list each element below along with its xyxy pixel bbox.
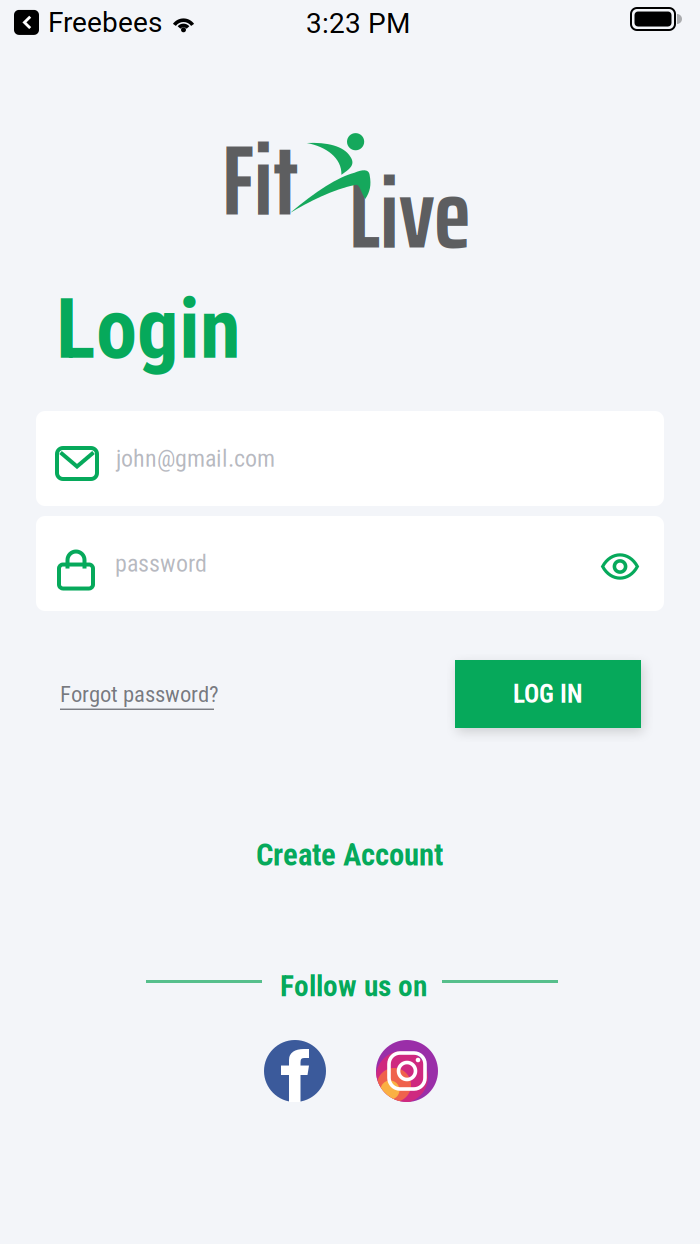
staticText: Login — [56, 281, 241, 378]
button[interactable]: Instagram — [376, 1040, 438, 1102]
button[interactable]: Create Account — [256, 833, 443, 877]
staticText: 3:23 PM — [306, 7, 410, 40]
button[interactable]: Facebook — [264, 1040, 326, 1102]
button[interactable]: Forgot password? — [60, 681, 219, 710]
staticText: LOG IN — [513, 679, 583, 709]
staticText: Fit — [222, 104, 298, 257]
button[interactable]: LOG IN — [455, 660, 641, 728]
staticText: john@gmail.com — [116, 444, 275, 472]
staticText: Live — [349, 137, 471, 290]
staticText: Follow us on — [280, 969, 427, 1003]
staticText: password — [115, 549, 207, 577]
button[interactable]: Show password — [601, 549, 664, 578]
staticText: Freebees — [48, 6, 162, 39]
staticText: Create Account — [256, 837, 443, 873]
staticText: Forgot password? — [60, 681, 219, 708]
